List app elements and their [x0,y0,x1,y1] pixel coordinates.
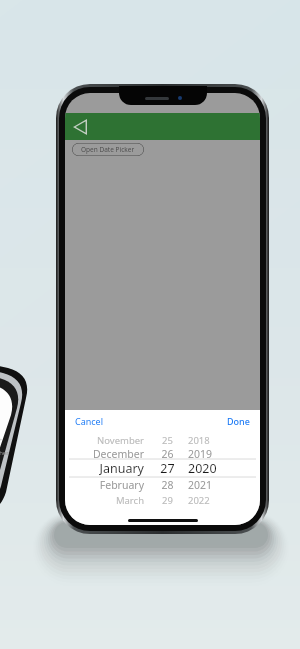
button[interactable]: Cancel [69,411,110,431]
button[interactable]: February [65,477,260,493]
staticText: December [92,447,144,461]
staticText: November [97,434,144,447]
staticText: 27 [160,460,175,476]
staticText: March [115,494,144,507]
staticText: Open Date Picker [81,145,135,154]
staticText: 0), [0,434,2,442]
button[interactable]: Open Date Picker [72,143,144,156]
staticText: 25 [162,434,173,447]
staticText: 2019 [188,447,213,461]
button[interactable]: November [65,432,260,448]
staticText: 2021 [188,478,213,492]
button[interactable]: Navigate back [70,116,92,138]
staticText: February [99,478,144,492]
staticText: January [99,460,144,476]
button[interactable]: March [65,492,260,508]
button[interactable]: Done [221,411,256,431]
staticText: 2022 [188,494,210,507]
staticText: Done [227,415,250,427]
button[interactable]: December [65,446,260,462]
staticText: 28 [161,478,174,492]
staticText: 29 [162,494,173,507]
staticText: 26 [161,447,174,461]
staticText: 2018 [188,434,210,447]
staticText: Cancel [75,415,104,427]
button[interactable]: January [65,460,260,476]
staticText: ther [0,449,9,457]
staticText: 2020 [188,460,217,476]
